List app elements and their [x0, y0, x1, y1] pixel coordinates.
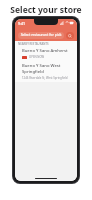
button[interactable]: Bueno Y Sano West Springfield — [15, 61, 77, 82]
staticText: 1246 Riverdale St, West Springfield — [22, 76, 68, 80]
staticText: Select your store — [10, 4, 82, 16]
staticText: Bueno Y Sano Amherst — [22, 48, 68, 54]
staticText: NEARBY RESTAURANTS — [18, 42, 49, 46]
staticText: 9:41 — [18, 21, 25, 26]
button[interactable]: Bueno Y Sano Amherst — [15, 46, 77, 61]
staticText: Select restaurant for pick up — [20, 32, 62, 39]
button[interactable]: Select restaurant for pick up — [18, 32, 64, 39]
button[interactable]: Map view — [66, 32, 74, 39]
staticText: OPEN NOW — [29, 55, 45, 59]
staticText: Bueno Y Sano West Springfield — [22, 63, 74, 75]
